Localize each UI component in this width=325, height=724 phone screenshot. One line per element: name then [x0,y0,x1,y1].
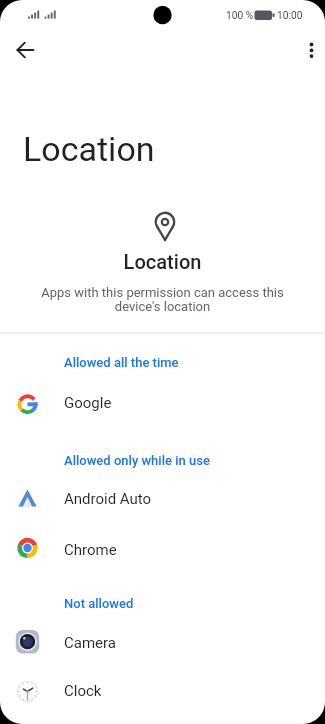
button[interactable]: Android Auto [0,475,325,523]
staticText: Location [0,250,325,273]
staticText: Allowed all the time [64,355,179,370]
button[interactable]: Clock [0,667,325,715]
button[interactable] [292,36,320,64]
staticText: Apps with this permission can access thi… [0,285,325,314]
staticText: Camera [64,634,116,652]
staticText: Clock [64,682,102,700]
button[interactable]: Chrome [0,526,325,574]
staticText: Location [23,129,155,169]
button[interactable]: Camera [0,619,325,667]
staticText: 100 % [226,10,254,22]
staticText: Not allowed [64,596,134,611]
button[interactable]: Google [0,379,325,427]
staticText: Google [64,394,112,412]
staticText: 10:00 [277,10,303,22]
staticText: Chrome [64,541,117,559]
button[interactable] [10,34,42,66]
staticText: Android Auto [64,490,152,508]
staticText: Allowed only while in use [64,453,210,468]
